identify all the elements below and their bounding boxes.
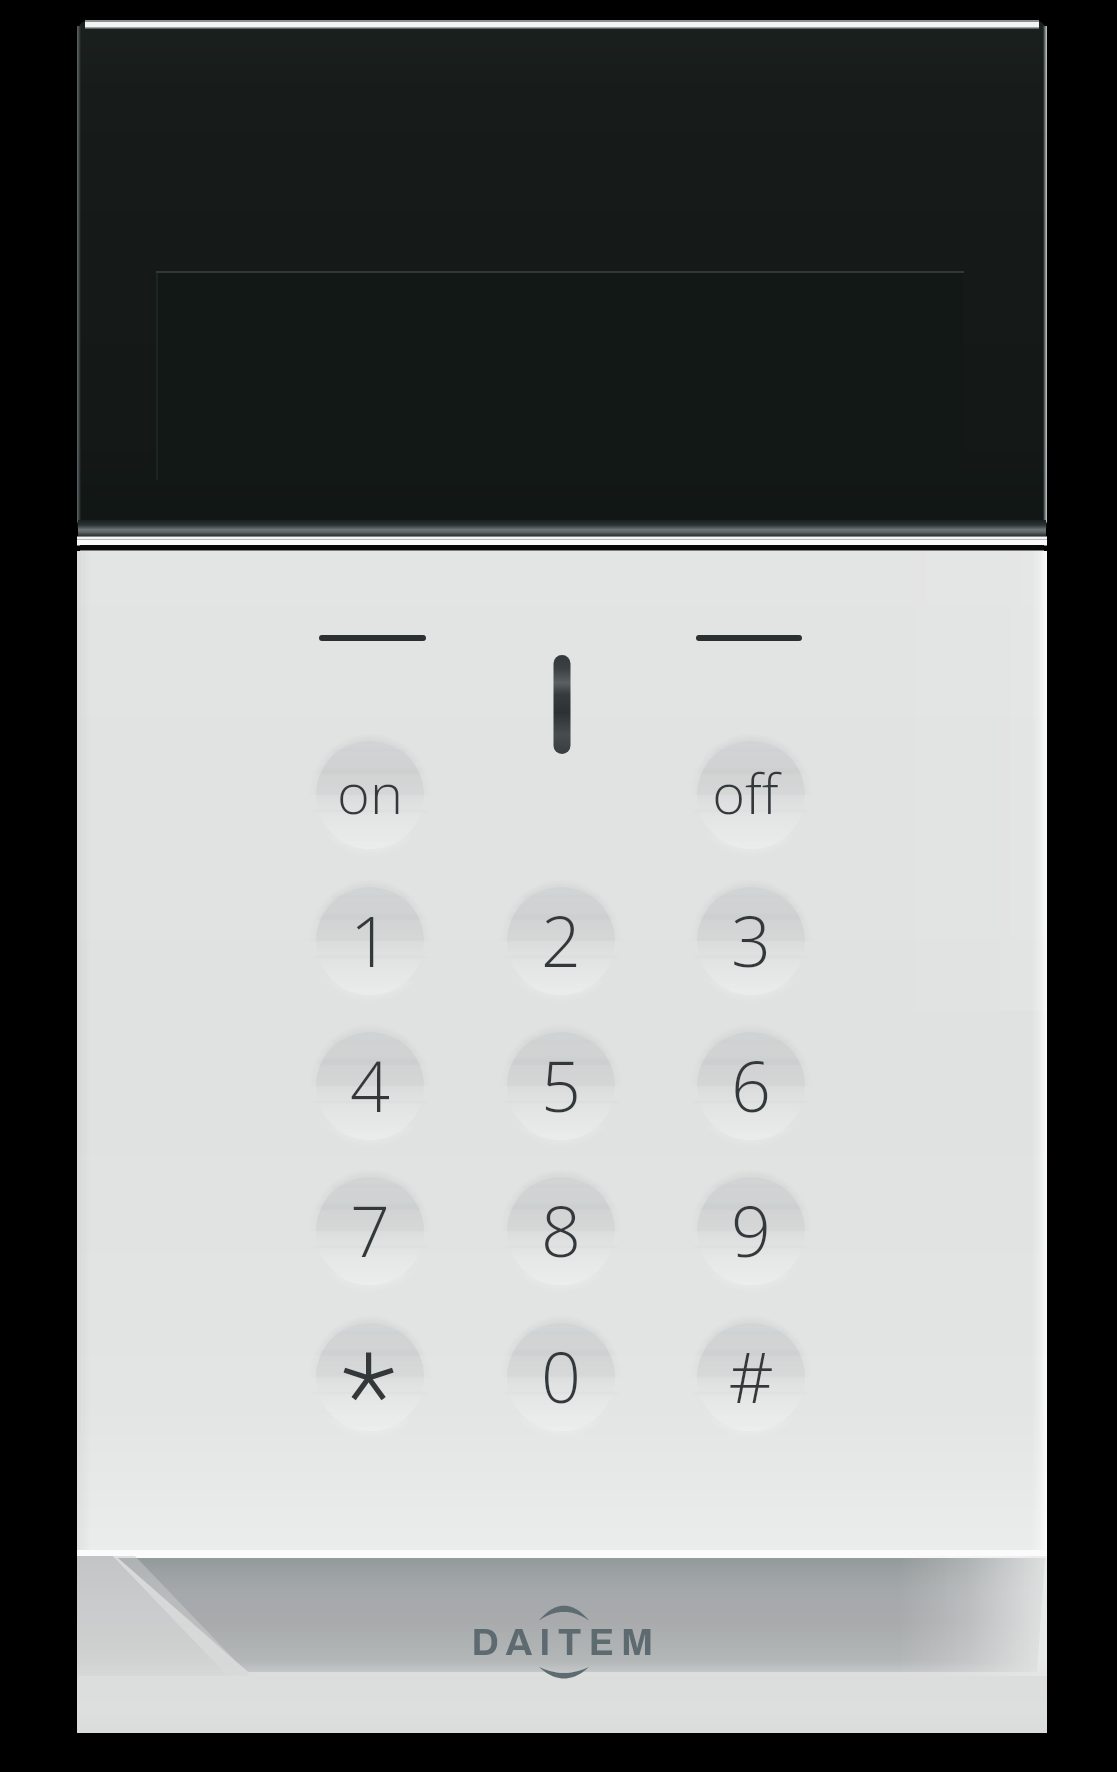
staticText: 6 [731, 1037, 771, 1132]
staticText: 8 [541, 1182, 581, 1277]
button[interactable]: Key 6 [692, 1025, 810, 1143]
staticText: 5 [541, 1037, 581, 1132]
staticText: # [728, 1328, 774, 1423]
staticText: DAITEM [471, 1623, 661, 1663]
button[interactable]: Key on [311, 732, 429, 850]
button[interactable]: Key * [311, 1316, 429, 1434]
staticText: off [712, 754, 779, 830]
staticText: 2 [541, 892, 581, 987]
button[interactable]: Key 4 [311, 1025, 429, 1143]
staticText: 7 [350, 1182, 390, 1277]
button[interactable]: Key 2 [502, 880, 620, 998]
staticText: 1 [350, 892, 390, 987]
button[interactable]: Key 9 [692, 1170, 810, 1288]
staticText: 4 [350, 1037, 390, 1132]
button[interactable]: Key off [692, 732, 810, 850]
button[interactable]: Key 0 [502, 1316, 620, 1434]
staticText: 9 [731, 1182, 771, 1277]
staticText: 3 [731, 892, 771, 987]
button[interactable]: Key 7 [311, 1170, 429, 1288]
button[interactable]: Key 8 [502, 1170, 620, 1288]
staticText: 0 [541, 1328, 581, 1423]
staticText: on [337, 754, 403, 830]
button[interactable]: Key # [692, 1316, 810, 1434]
button[interactable]: Key 5 [502, 1025, 620, 1143]
button[interactable]: Key 3 [692, 880, 810, 998]
button[interactable]: Key 1 [311, 880, 429, 998]
